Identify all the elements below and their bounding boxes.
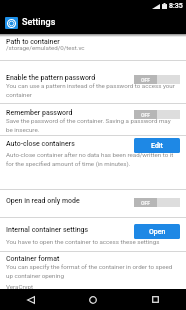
button[interactable]: Remember password: [0, 104, 186, 136]
staticText: Open: [149, 228, 166, 236]
button[interactable]: Toggle off: [134, 198, 180, 207]
staticText: 8:35: [169, 2, 183, 10]
staticText: Auto-close container after no data has b…: [6, 151, 178, 168]
staticText: Settings: [22, 17, 56, 28]
staticText: OFF: [141, 77, 150, 83]
staticText: Enable the pattern password: [6, 74, 96, 82]
button[interactable]: Toggle off: [134, 110, 180, 119]
staticText: /storage/emulated/0/test.vc: [6, 44, 85, 51]
staticText: Container format: [6, 255, 60, 263]
staticText: You have to open the container to access…: [6, 238, 160, 245]
button[interactable]: Back: [0, 289, 62, 310]
staticText: Internal container settings: [6, 226, 89, 234]
button[interactable]: Recent apps: [124, 289, 186, 310]
staticText: OFF: [141, 200, 150, 206]
button[interactable]: App icon: [5, 17, 18, 29]
staticText: Open in read only mode: [6, 197, 80, 205]
staticText: Path to container: [6, 38, 60, 46]
button[interactable]: Enable the pattern password: [0, 61, 186, 104]
staticText: You can specify the format of the contai…: [6, 263, 178, 280]
button[interactable]: Home: [62, 289, 124, 310]
button[interactable]: Open in read only mode: [0, 190, 186, 218]
button[interactable]: Container format: [0, 252, 186, 289]
staticText: VeraCrypt: [6, 283, 34, 290]
button[interactable]: Auto-close containers: [0, 136, 186, 190]
staticText: Save the password of the container. Savi…: [6, 117, 178, 134]
button[interactable]: Internal container settings: [0, 218, 186, 252]
button[interactable]: Path to container: [0, 34, 186, 61]
button[interactable]: Open: [134, 224, 180, 239]
staticText: Edit: [151, 142, 163, 150]
button[interactable]: Edit: [134, 138, 180, 153]
staticText: Remember password: [6, 109, 73, 117]
staticText: You can use a pattern instead of the pas…: [6, 82, 178, 99]
button[interactable]: Toggle off: [134, 75, 180, 84]
staticText: Auto-close containers: [6, 140, 75, 148]
staticText: OFF: [141, 112, 150, 118]
